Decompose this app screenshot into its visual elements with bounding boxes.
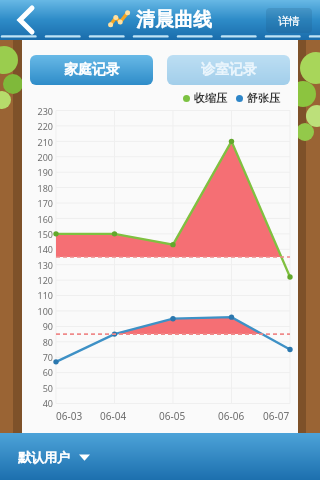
staticText: 06-05: [159, 409, 186, 423]
staticText: 100: [37, 305, 53, 317]
button[interactable]: 家庭记录: [30, 55, 153, 85]
staticText: 06-06: [218, 409, 245, 423]
staticText: 40: [42, 397, 53, 409]
button[interactable]: 诊室记录: [167, 55, 290, 85]
staticText: 80: [42, 336, 53, 348]
staticText: 家庭记录: [64, 61, 120, 79]
staticText: 110: [37, 289, 53, 301]
staticText: 180: [37, 182, 53, 194]
staticText: 诊室记录: [201, 61, 257, 79]
staticText: 230: [37, 105, 53, 117]
staticText: 90: [42, 320, 53, 332]
staticText: 190: [37, 166, 53, 178]
staticText: 120: [37, 274, 53, 286]
staticText: 清晨曲线: [136, 8, 212, 32]
button[interactable]: 默认用户: [18, 449, 90, 465]
staticText: 50: [42, 382, 53, 394]
staticText: 210: [37, 136, 53, 148]
staticText: 170: [37, 197, 53, 209]
staticText: 200: [37, 151, 53, 163]
staticText: 06-07: [263, 409, 290, 423]
button[interactable]: Back: [6, 2, 42, 38]
staticText: 60: [42, 366, 53, 378]
staticText: 收缩压: [194, 91, 227, 105]
staticText: 详情: [278, 14, 300, 28]
staticText: 默认用户: [18, 449, 70, 465]
staticText: 06-04: [100, 409, 127, 423]
staticText: 140: [37, 243, 53, 255]
staticText: 130: [37, 259, 53, 271]
staticText: 220: [37, 120, 53, 132]
staticText: 70: [42, 351, 53, 363]
staticText: 06-03: [56, 409, 83, 423]
staticText: 舒张压: [247, 91, 280, 105]
staticText: 150: [37, 228, 53, 240]
button[interactable]: 详情: [266, 8, 312, 33]
staticText: 160: [37, 213, 53, 225]
